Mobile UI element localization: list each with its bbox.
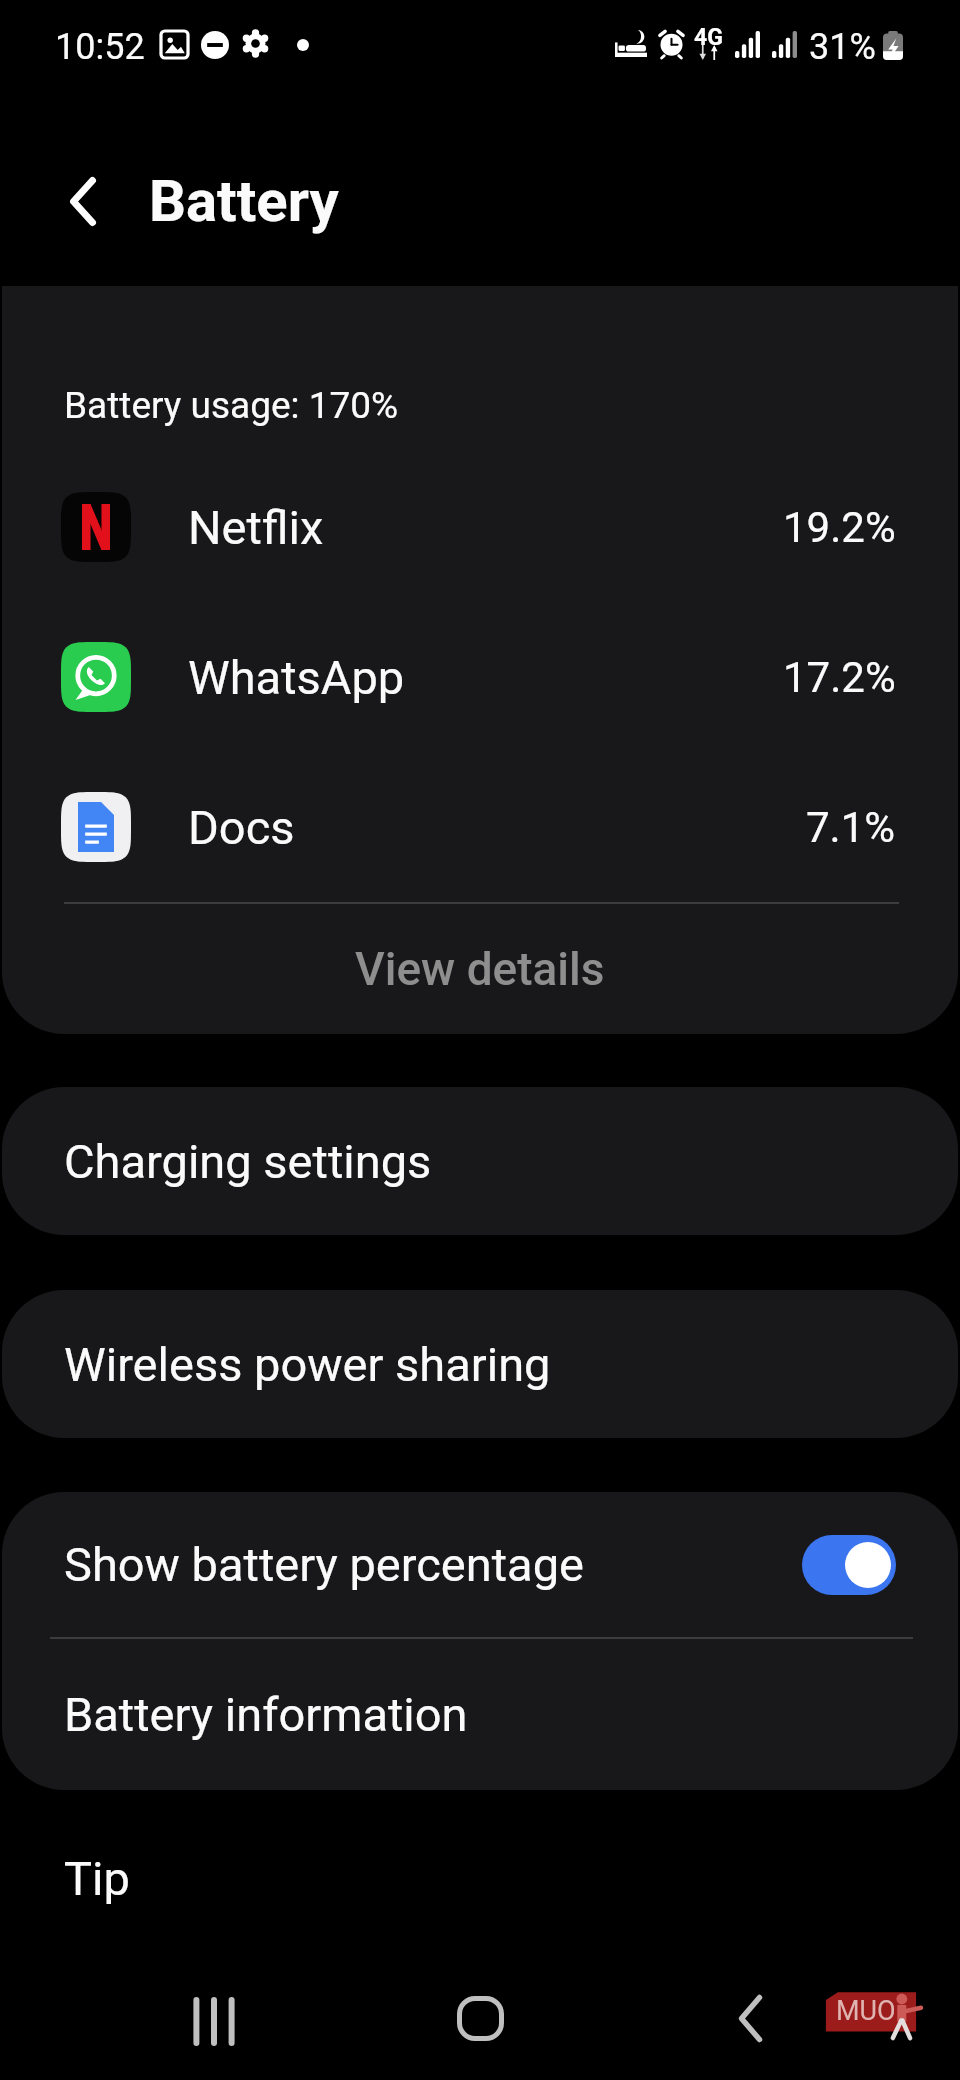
staticText: 4G [694, 24, 723, 51]
staticText: MUO [836, 1995, 896, 2027]
staticText: 17.2% [783, 653, 896, 702]
staticText: Battery [149, 167, 339, 235]
button[interactable]: Docs [2, 752, 958, 902]
staticText: Docs [188, 800, 806, 855]
staticText: 31% [809, 26, 876, 68]
staticText: Wireless power sharing [64, 1337, 551, 1392]
button[interactable]: Back [43, 161, 123, 241]
staticText: Charging settings [64, 1134, 432, 1189]
button[interactable]: Battery information [2, 1639, 958, 1790]
button[interactable]: Charging settings [2, 1087, 958, 1235]
staticText: 10:52 [55, 26, 145, 68]
staticText: WhatsApp [188, 650, 783, 705]
staticText: Battery usage: 170% [64, 384, 399, 427]
staticText: Battery information [64, 1687, 468, 1742]
button[interactable]: Wireless power sharing [2, 1290, 958, 1438]
button[interactable]: Home [425, 1963, 535, 2073]
button[interactable]: Show battery percentage [2, 1492, 958, 1637]
staticText: View details [355, 942, 605, 996]
staticText: Show battery percentage [64, 1537, 802, 1592]
button[interactable]: Show battery percentage toggle [802, 1535, 896, 1595]
staticText: 7.1% [806, 803, 896, 852]
button[interactable]: Netflix [2, 452, 958, 602]
button[interactable]: Recent apps [156, 1966, 266, 2076]
staticText: Tip [64, 1851, 130, 1906]
button[interactable]: WhatsApp [2, 602, 958, 752]
button[interactable]: View details [2, 904, 958, 1034]
staticText: 19.2% [783, 503, 896, 552]
staticText: Netflix [188, 500, 783, 555]
button[interactable]: Back [695, 1963, 805, 2073]
